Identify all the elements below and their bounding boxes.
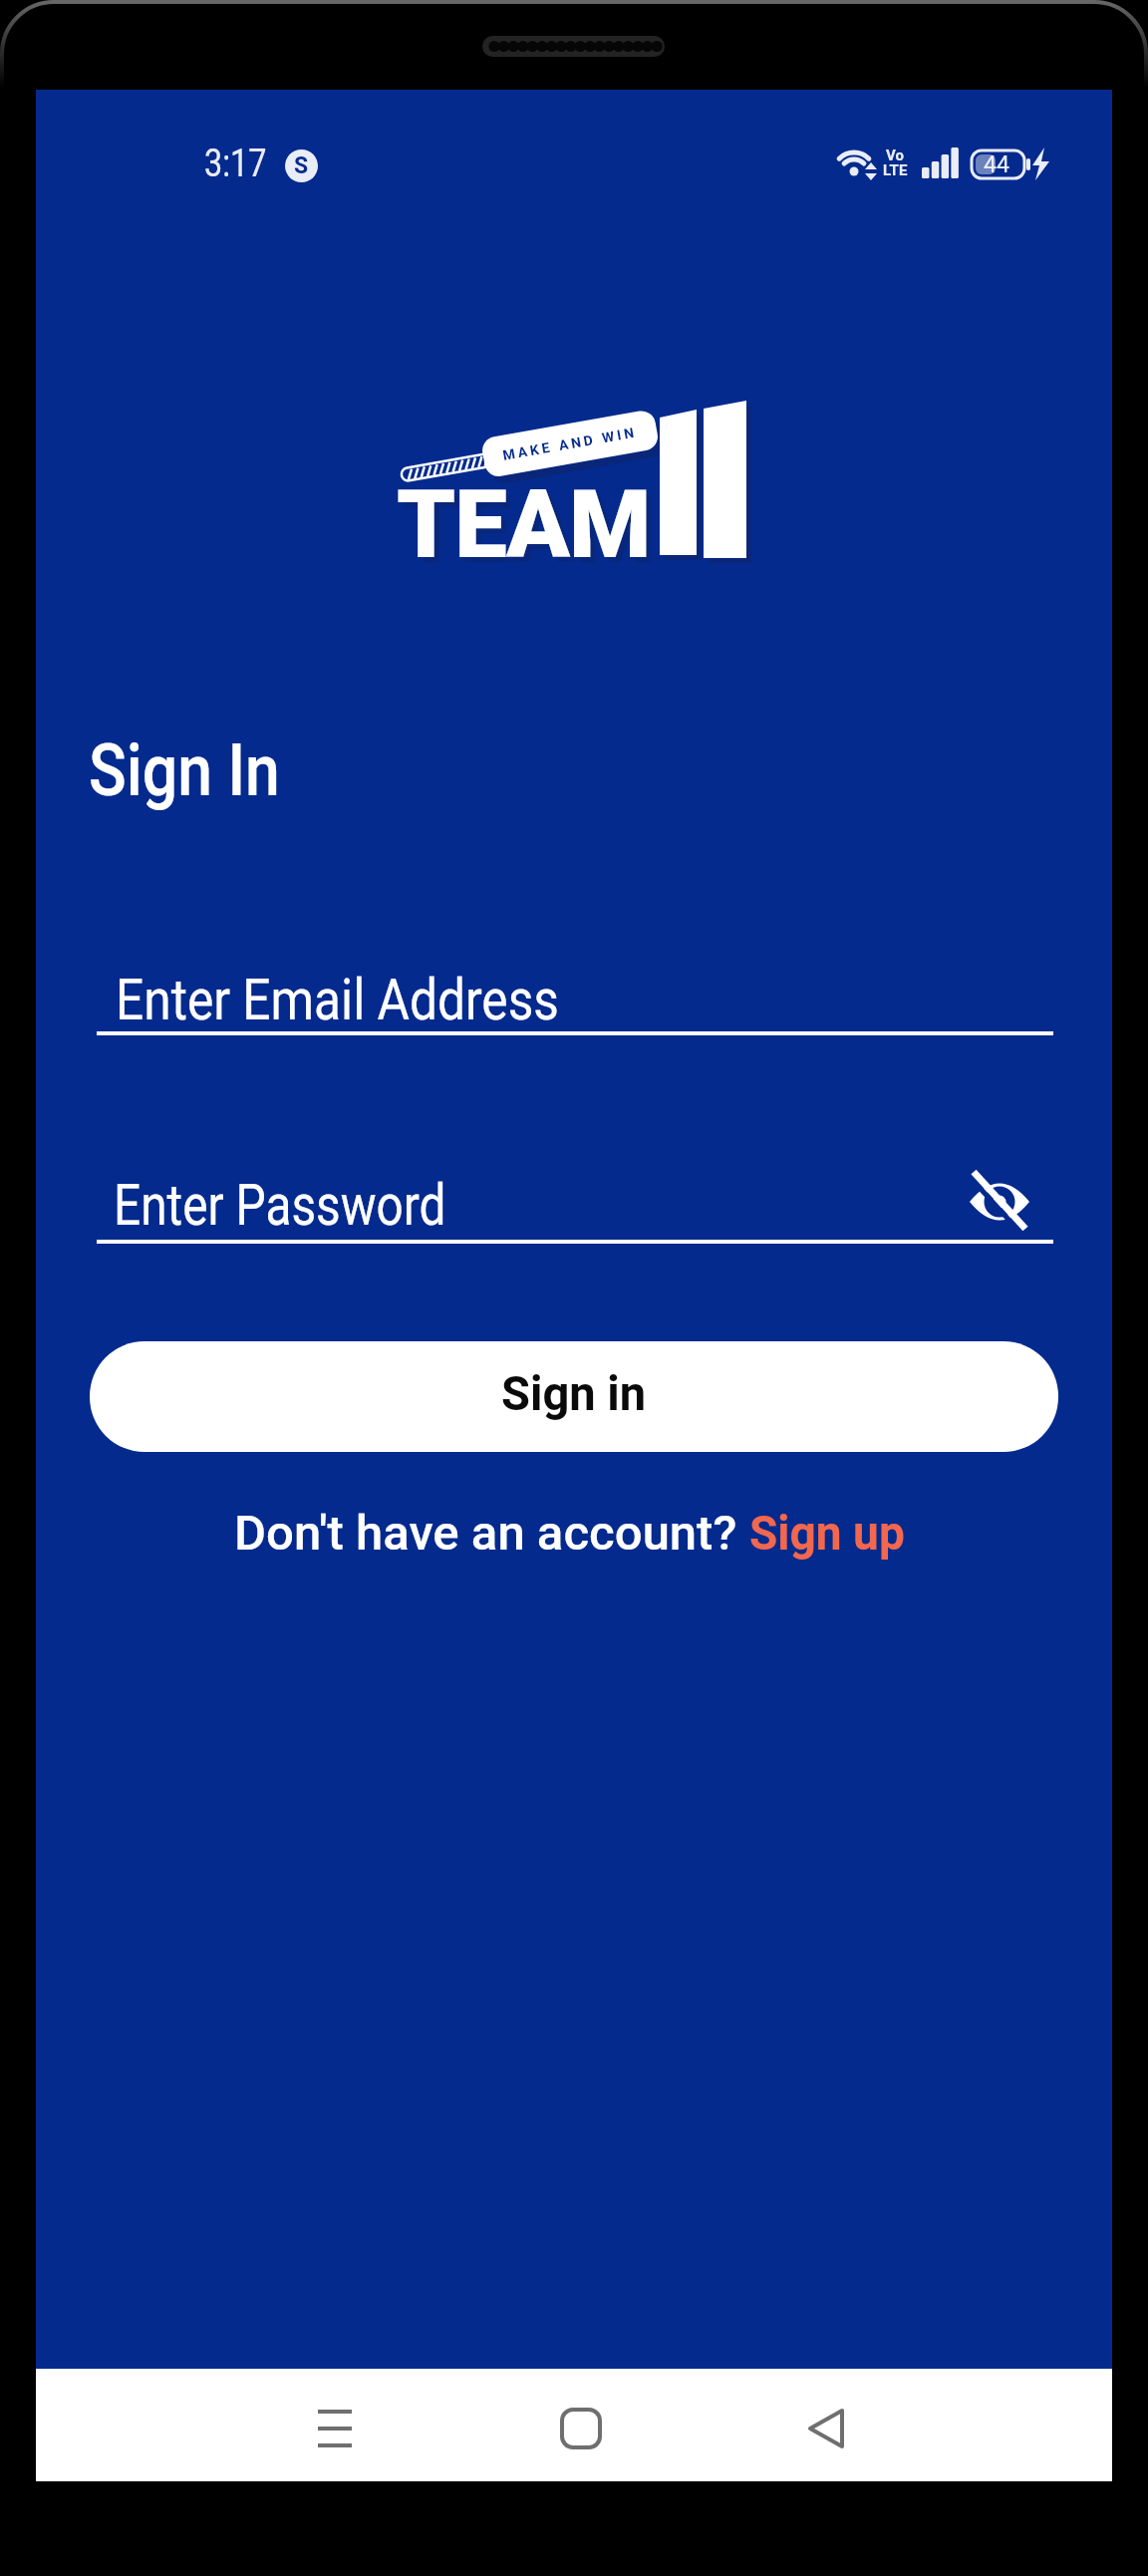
staticText: Enter Email Address bbox=[116, 967, 559, 1033]
button[interactable] bbox=[295, 2389, 375, 2468]
button[interactable]: Sign up bbox=[749, 1505, 915, 1562]
staticText: TEAM bbox=[402, 475, 656, 585]
button[interactable] bbox=[963, 1166, 1036, 1240]
staticText: Vo bbox=[886, 146, 904, 164]
button[interactable]: Enter Email Address bbox=[97, 947, 1053, 1036]
button[interactable]: Sign in bbox=[90, 1341, 1058, 1452]
staticText: 44 bbox=[984, 151, 1009, 178]
staticText: LTE bbox=[883, 161, 908, 179]
staticText: S bbox=[294, 152, 309, 179]
staticText: TEAM bbox=[397, 470, 651, 580]
staticText: 3:17 bbox=[204, 141, 267, 186]
staticText: Enter Password bbox=[114, 1172, 446, 1239]
button[interactable] bbox=[541, 2389, 621, 2468]
button[interactable] bbox=[786, 2389, 866, 2468]
button[interactable]: Enter Password bbox=[97, 1155, 1053, 1245]
staticText: Don't have an account? bbox=[234, 1505, 749, 1562]
staticText: Sign In bbox=[89, 728, 281, 812]
staticText: Sign in bbox=[501, 1365, 647, 1422]
